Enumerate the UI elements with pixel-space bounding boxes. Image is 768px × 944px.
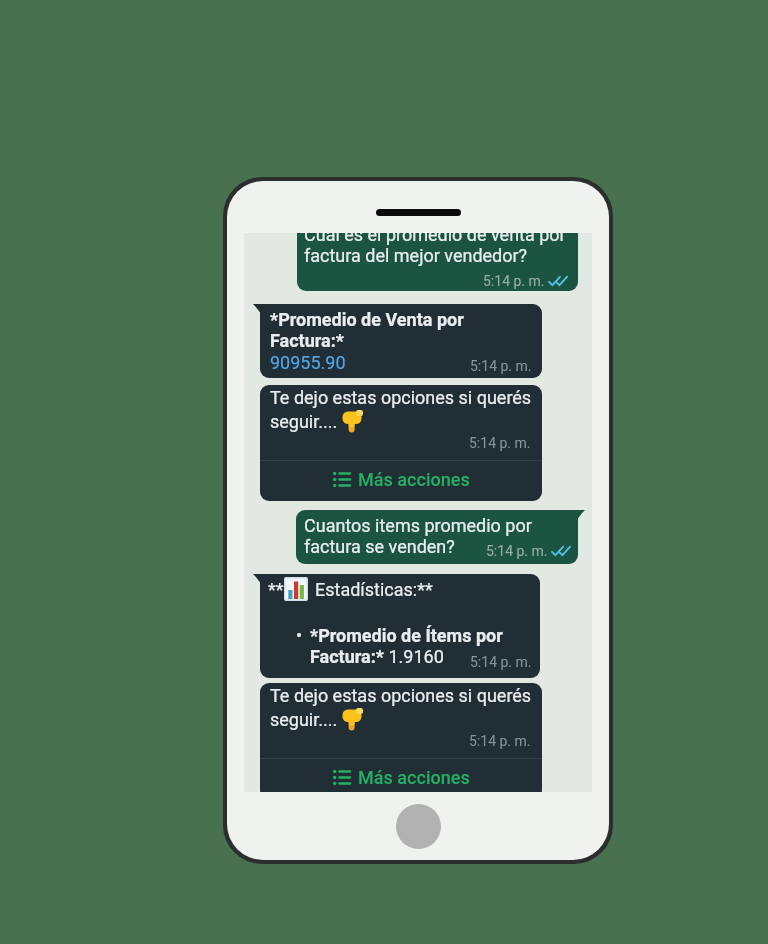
staticText: Cual es el promedio de venta por factura… bbox=[304, 233, 566, 267]
staticText: 5:14 p. m. bbox=[469, 435, 531, 451]
staticText: 5:14 p. m. bbox=[470, 358, 532, 374]
staticText: 5:14 p. m. bbox=[483, 273, 545, 289]
staticText: Cuantos items promedio por factura se ve… bbox=[304, 515, 532, 558]
button[interactable]: Te dejo estas opciones si querés bbox=[260, 683, 542, 792]
button[interactable]: Cual es el promedio de venta por factura… bbox=[297, 233, 578, 291]
staticText: *Promedio de Ítems por Factura:* 1.9160 bbox=[310, 625, 503, 668]
button[interactable]: Te dejo estas opciones si querés bbox=[260, 385, 542, 501]
staticText: 5:14 p. m. bbox=[486, 543, 548, 559]
staticText: • bbox=[296, 625, 303, 646]
staticText: *Promedio de Venta por Factura:* 90955.9… bbox=[270, 309, 464, 374]
staticText: Te dejo estas opciones si querés bbox=[270, 685, 532, 706]
staticText: Más acciones bbox=[358, 767, 470, 788]
button[interactable]: ** bbox=[260, 574, 540, 678]
staticText: seguir.... bbox=[270, 411, 338, 432]
staticText: Estadísticas:** bbox=[315, 579, 433, 600]
staticText: seguir.... bbox=[270, 709, 338, 730]
staticText: Te dejo estas opciones si querés bbox=[270, 387, 532, 408]
button[interactable] bbox=[396, 804, 441, 849]
button[interactable]: Cuantos items promedio por factura se ve… bbox=[296, 510, 578, 564]
staticText: 5:14 p. m. bbox=[469, 733, 531, 749]
button[interactable]: Más acciones bbox=[333, 469, 470, 490]
staticText: ** bbox=[268, 579, 284, 600]
button[interactable]: Más acciones bbox=[333, 767, 470, 788]
button[interactable]: *Promedio de Venta por Factura:* 90955.9… bbox=[260, 304, 542, 378]
staticText: Más acciones bbox=[358, 469, 470, 490]
staticText: 5:14 p. m. bbox=[470, 654, 532, 670]
